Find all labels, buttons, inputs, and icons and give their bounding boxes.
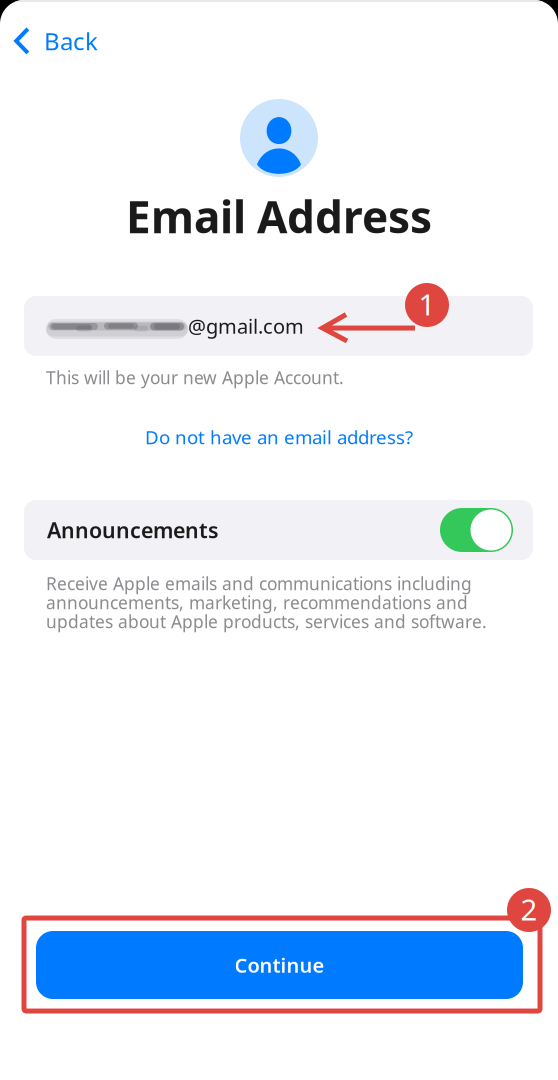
button[interactable]: Back <box>0 16 112 66</box>
staticText: 1 <box>418 284 435 323</box>
staticText: Back <box>44 25 98 57</box>
staticText: announcements, marketing, recommendation… <box>46 591 468 614</box>
staticText: Announcements <box>47 516 219 544</box>
staticText: @gmail.com <box>188 313 304 339</box>
staticText: Continue <box>234 952 324 978</box>
staticText: 2 <box>520 889 537 928</box>
staticText: Email Address <box>126 187 432 245</box>
button[interactable]: Continue <box>36 931 523 999</box>
button[interactable]: Do not have an email address? <box>129 420 429 454</box>
staticText: This will be your new Apple Account. <box>46 366 344 389</box>
staticText: Do not have an email address? <box>145 425 413 449</box>
button[interactable]: Announcements <box>24 500 533 560</box>
staticText: updates about Apple products, services a… <box>46 610 487 633</box>
staticText: Receive Apple emails and communications … <box>46 572 472 595</box>
